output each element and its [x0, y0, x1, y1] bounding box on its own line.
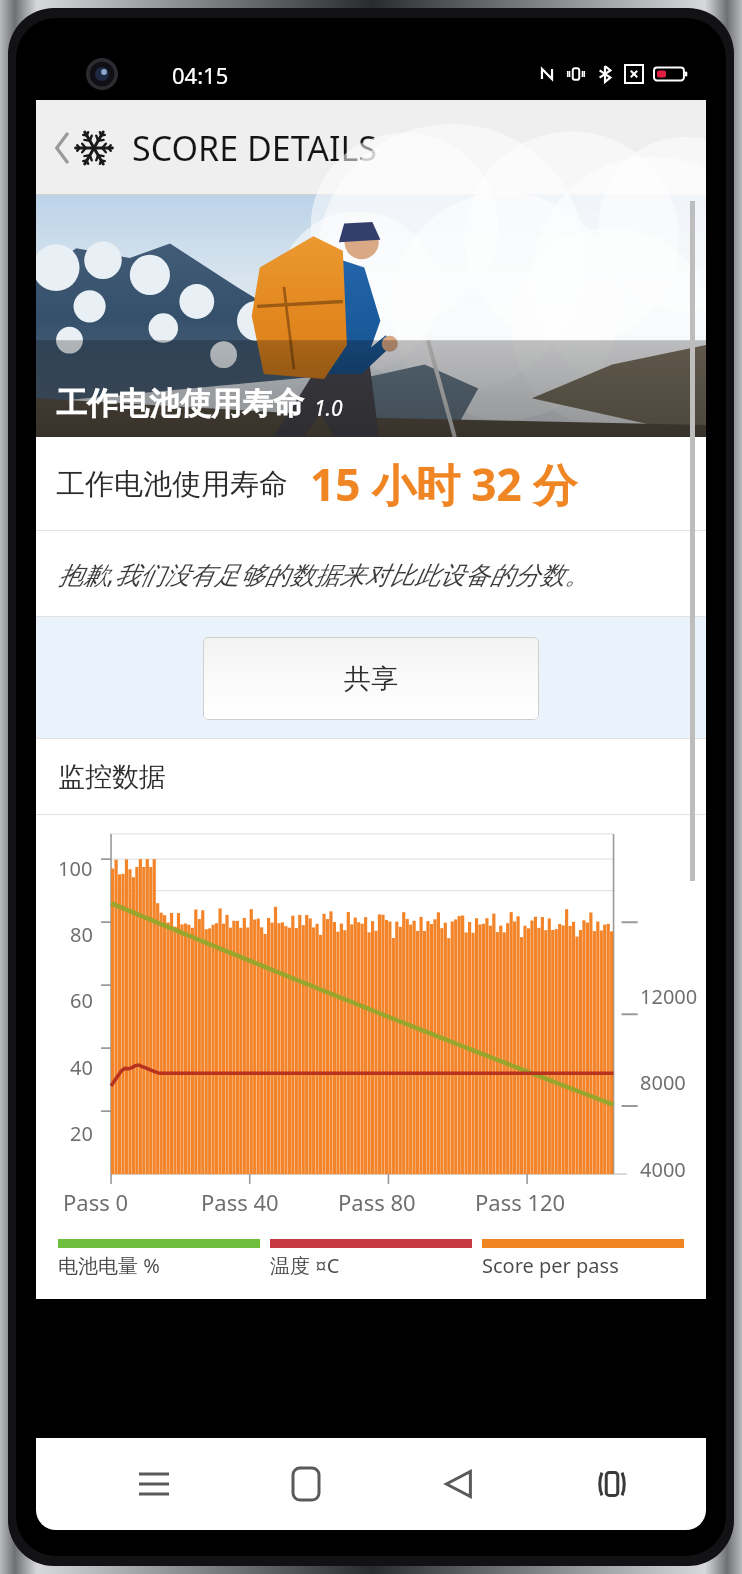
button[interactable]: Back — [48, 112, 122, 184]
staticText: 100 — [58, 855, 93, 882]
button[interactable]: Home — [230, 1438, 382, 1530]
staticText: 电池电量 % — [58, 1252, 160, 1279]
button[interactable]: 共享 — [203, 637, 539, 720]
button[interactable]: Back — [382, 1438, 535, 1530]
staticText: 40 — [70, 1054, 93, 1081]
staticText: Pass 120 — [475, 1187, 566, 1217]
staticText: 60 — [70, 987, 93, 1014]
staticText: 工作电池使用寿命 — [56, 466, 288, 503]
staticText: 04:15 — [172, 60, 229, 90]
staticText: 1.0 — [314, 394, 343, 423]
staticText: 80 — [70, 921, 93, 948]
staticText: Score per pass — [482, 1252, 619, 1279]
staticText: Pass 0 — [63, 1187, 129, 1217]
staticText: 监控数据 — [58, 760, 166, 794]
staticText: 8000 — [640, 1069, 686, 1096]
staticText: 4000 — [640, 1156, 686, 1183]
staticText: 温度 ¤C — [270, 1252, 340, 1279]
staticText: 共享 — [344, 662, 398, 696]
button[interactable]: Vibrate — [535, 1438, 688, 1530]
staticText: 15 小时 32 分 — [310, 454, 577, 514]
staticText: 20 — [70, 1120, 93, 1147]
button[interactable]: Menu — [78, 1438, 230, 1530]
staticText: 工作电池使用寿命 — [56, 384, 304, 423]
staticText: 抱歉,我们没有足够的数据来对比此设备的分数。 — [58, 557, 590, 591]
staticText: 12000 — [640, 983, 698, 1010]
button[interactable]: 工作电池使用寿命 — [36, 195, 706, 437]
staticText: Pass 40 — [201, 1187, 279, 1217]
staticText: SCORE DETAILS — [132, 125, 377, 171]
staticText: Pass 80 — [338, 1187, 416, 1217]
